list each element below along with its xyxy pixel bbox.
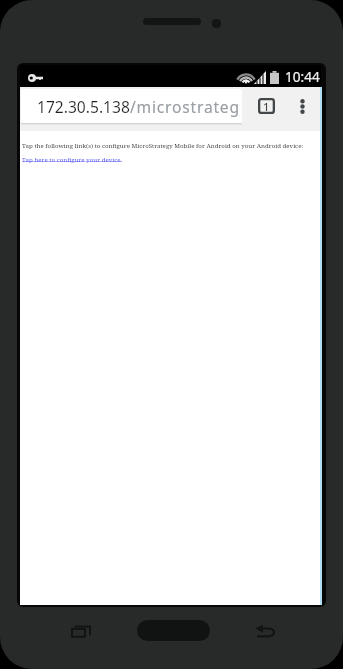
staticText: 10:44 <box>285 67 320 86</box>
staticText: 172.30.5.138 <box>37 96 130 117</box>
staticText: /microstrategy <box>130 96 240 117</box>
staticText: Tap here to configure your device. <box>22 155 123 163</box>
button[interactable]: Tap here to configure your device. <box>22 155 123 163</box>
button[interactable]: More options <box>282 86 322 126</box>
staticText: Tap the following link(s) to configure M… <box>22 141 304 149</box>
button[interactable]: Back <box>243 609 287 653</box>
button[interactable]: Home <box>137 620 210 641</box>
button[interactable]: 172.30.5.138 <box>21 89 242 123</box>
button[interactable]: Tabs <box>246 86 286 126</box>
button[interactable]: Recent apps <box>59 610 103 654</box>
staticText: 1 <box>263 99 270 114</box>
